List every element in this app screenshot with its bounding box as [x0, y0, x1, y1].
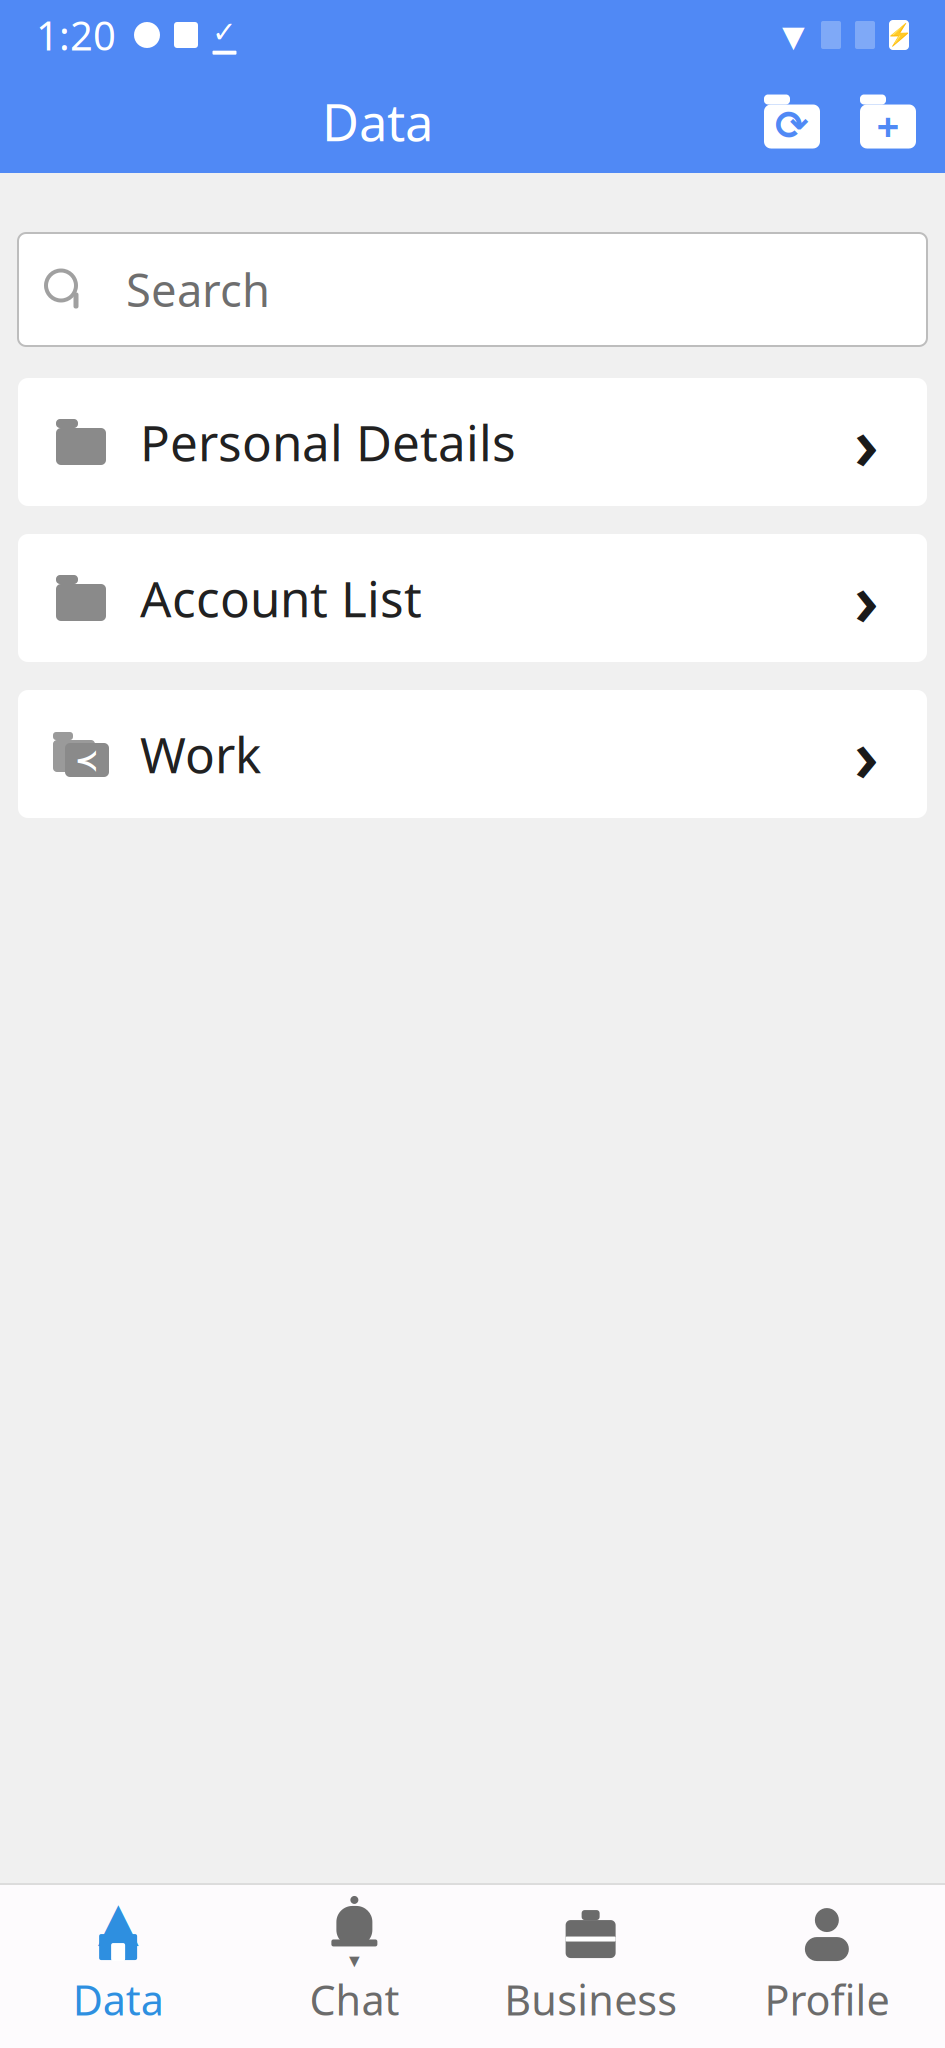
- button[interactable]: ≺: [18, 690, 927, 818]
- staticText: Work: [140, 721, 261, 787]
- button[interactable]: Personal Details: [18, 378, 927, 506]
- staticText: ≺: [74, 743, 99, 777]
- staticText: +: [876, 99, 899, 152]
- staticText: ›: [854, 706, 879, 802]
- staticText: ›: [854, 394, 879, 490]
- staticText: ▾: [782, 9, 805, 61]
- staticText: Business: [504, 1972, 677, 2027]
- staticText: ⟳: [775, 103, 809, 148]
- button[interactable]: Search: [18, 233, 927, 346]
- staticText: ▾: [349, 1948, 360, 1972]
- staticText: Account List: [140, 565, 422, 631]
- button[interactable]: Profile: [709, 1891, 945, 2041]
- staticText: ▲: [98, 1891, 139, 1951]
- staticText: Search: [126, 259, 270, 320]
- staticText: Data: [322, 88, 433, 155]
- button[interactable]: ▾: [236, 1891, 472, 2041]
- staticText: ›: [854, 550, 879, 646]
- staticText: Profile: [764, 1972, 889, 2027]
- staticText: Data: [73, 1972, 164, 2027]
- staticText: ✓: [212, 15, 237, 49]
- staticText: 1:20: [36, 8, 116, 61]
- button[interactable]: Sync: [755, 84, 829, 158]
- button[interactable]: ▲: [0, 1891, 236, 2041]
- button[interactable]: Business: [472, 1891, 709, 2041]
- staticText: ⚡: [885, 23, 912, 47]
- button[interactable]: New folder: [851, 84, 925, 158]
- staticText: Chat: [309, 1972, 399, 2027]
- staticText: Personal Details: [140, 409, 516, 475]
- button[interactable]: Account List: [18, 534, 927, 662]
